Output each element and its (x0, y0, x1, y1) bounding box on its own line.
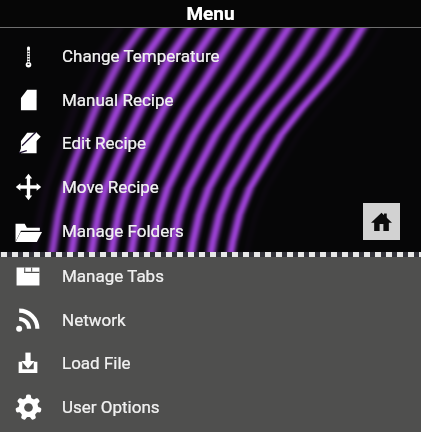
staticText: Manage Folders (62, 221, 184, 241)
staticText: Network (62, 310, 126, 330)
button[interactable]: Move Recipe (0, 165, 421, 209)
button[interactable]: Edit Recipe (0, 121, 421, 165)
staticText: Manual Recipe (62, 90, 174, 110)
button[interactable]: Manage Tabs (0, 254, 421, 298)
staticText: Manage Tabs (62, 266, 164, 286)
button[interactable]: Load File (0, 341, 421, 385)
staticText: Edit Recipe (62, 133, 147, 153)
staticText: Change Temperature (62, 46, 220, 66)
staticText: Load File (62, 353, 131, 373)
staticText: Move Recipe (62, 177, 159, 197)
button[interactable]: Manual Recipe (0, 78, 421, 122)
staticText: Menu (186, 2, 235, 24)
button[interactable]: Manage Folders (0, 209, 421, 253)
button[interactable]: Change Temperature (0, 34, 421, 78)
staticText: User Options (62, 397, 160, 417)
button[interactable]: Network (0, 298, 421, 342)
button[interactable]: Home (363, 203, 400, 240)
button[interactable]: User Options (0, 385, 421, 429)
